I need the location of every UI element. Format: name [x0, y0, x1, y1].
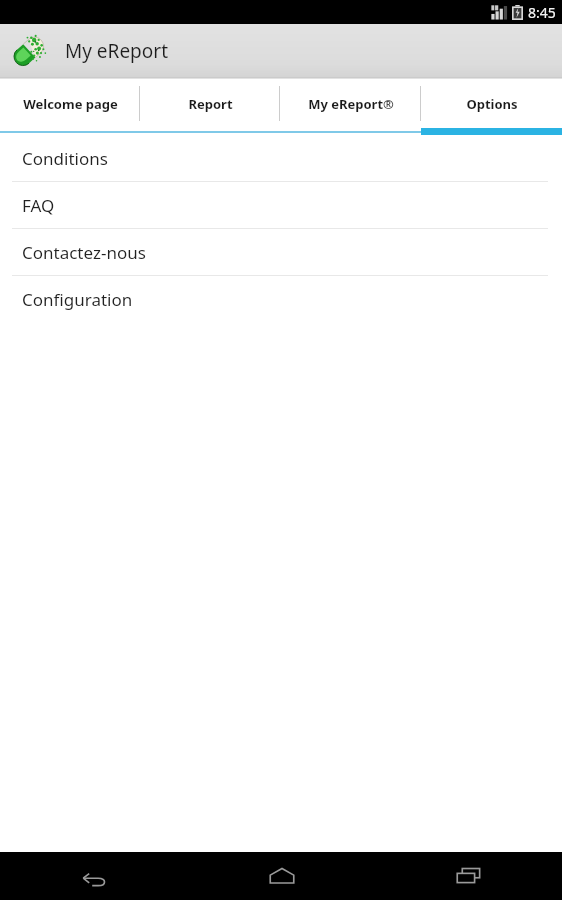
staticText: Configuration [22, 288, 133, 311]
staticText: Welcome page [23, 95, 118, 113]
button[interactable]: Recent apps [375, 852, 562, 900]
staticText: 8:45 [528, 3, 556, 22]
staticText: Report [188, 95, 233, 113]
button[interactable]: My eReport® [280, 79, 421, 128]
staticText: Options [466, 95, 518, 113]
button[interactable]: Back [0, 852, 188, 900]
staticText: Contactez-nous [22, 241, 146, 264]
button[interactable]: Report [140, 79, 280, 128]
staticText: FAQ [22, 194, 55, 217]
staticText: My eReport® [308, 95, 394, 113]
button[interactable]: Conditions [0, 135, 562, 181]
staticText: Conditions [22, 147, 108, 170]
button[interactable]: Welcome page [0, 79, 140, 128]
button[interactable]: FAQ [0, 182, 562, 228]
button[interactable]: Contactez-nous [0, 229, 562, 275]
button[interactable]: Configuration [0, 276, 562, 322]
button[interactable]: Home [188, 852, 375, 900]
button[interactable]: Options [421, 79, 562, 128]
staticText: My eReport [65, 38, 168, 64]
